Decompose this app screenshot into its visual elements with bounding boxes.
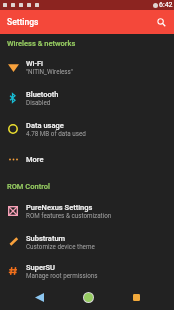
staticText: Bluetooth <box>26 90 59 99</box>
staticText: Wi-Fi <box>26 59 44 68</box>
staticText: "NITIN_Wireless" <box>26 68 73 75</box>
staticText: Manage root permissions <box>26 272 98 279</box>
button[interactable]: Bluetooth <box>0 82 174 113</box>
button[interactable]: Search <box>153 14 169 30</box>
staticText: 6:42 <box>159 1 173 9</box>
staticText: ROM features & customization <box>26 212 112 219</box>
staticText: Data usage <box>26 121 64 130</box>
staticText: Settings <box>7 17 39 27</box>
button[interactable]: More <box>0 144 174 175</box>
button[interactable]: Wi-Fi <box>0 51 174 82</box>
staticText: Wireless & networks <box>7 39 76 48</box>
button[interactable]: SuperSU <box>0 257 174 284</box>
staticText: ROM Control <box>7 182 50 191</box>
staticText: More <box>26 155 44 164</box>
button[interactable]: Data usage <box>0 113 174 144</box>
button[interactable]: Back <box>27 285 51 309</box>
staticText: Substratum <box>26 234 66 243</box>
button[interactable]: Home <box>76 285 100 309</box>
staticText: Disabled <box>26 99 51 106</box>
staticText: PureNexus Settings <box>26 203 93 212</box>
button[interactable]: Substratum <box>0 226 174 257</box>
button[interactable]: Recent apps <box>124 285 148 309</box>
staticText: 4.78 MB of data used <box>26 130 86 137</box>
staticText: SuperSU <box>26 263 56 272</box>
button[interactable]: PureNexus Settings <box>0 195 174 226</box>
staticText: Customize device theme <box>26 243 95 250</box>
